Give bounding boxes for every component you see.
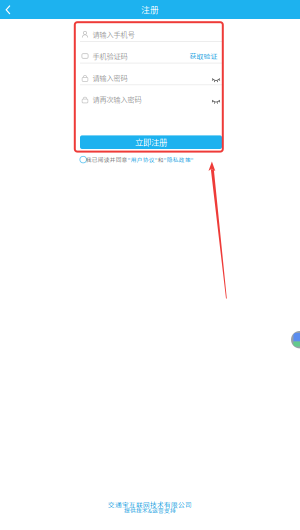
button[interactable]: 获取验证 [189, 51, 217, 60]
staticText: "隐私政策" [164, 156, 194, 164]
staticText: 和 [158, 156, 164, 164]
button[interactable]: Back [0, 0, 22, 19]
button[interactable]: Agree to terms [79, 156, 87, 164]
staticText: 交通宝互联网技术有限公司 [108, 500, 192, 509]
staticText: 立即注册 [135, 136, 167, 148]
staticText: "用户协议" [128, 156, 158, 164]
staticText: 获取验证 [189, 51, 217, 61]
staticText: 提供技术&运营支持 [124, 506, 176, 514]
staticText: 手机验证码 [93, 51, 128, 61]
button[interactable]: "隐私政策" [164, 156, 194, 164]
button[interactable]: 立即注册 [80, 135, 222, 149]
button[interactable]: Open app [291, 331, 300, 348]
staticText: 请输入密码 [93, 73, 128, 83]
staticText: 请输入手机号 [93, 29, 135, 40]
staticText: 请再次输入密码 [93, 94, 142, 105]
staticText: 注册 [141, 3, 159, 16]
staticText: 我已阅读并同意 [86, 156, 128, 164]
button[interactable]: Toggle password visibility [212, 78, 220, 83]
button[interactable]: "用户协议" [128, 156, 158, 164]
button[interactable]: Toggle password visibility [212, 100, 220, 105]
